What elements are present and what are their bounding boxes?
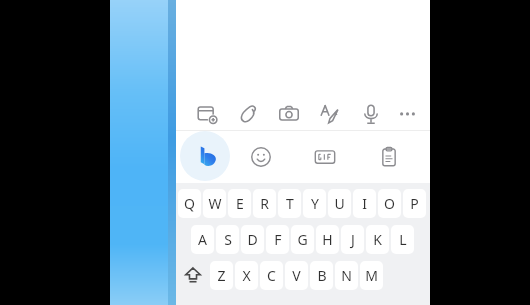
staticText: U bbox=[334, 194, 345, 213]
button[interactable]: N bbox=[335, 261, 358, 290]
button[interactable]: Bing search bbox=[190, 140, 224, 174]
staticText: S bbox=[224, 230, 232, 249]
button[interactable]: Shift bbox=[177, 260, 208, 290]
button[interactable]: W bbox=[203, 189, 226, 218]
button[interactable]: J bbox=[341, 225, 364, 254]
button[interactable]: Attach file bbox=[233, 99, 263, 129]
button[interactable]: A bbox=[191, 225, 214, 254]
button[interactable]: P bbox=[403, 189, 426, 218]
button[interactable]: Clipboard bbox=[374, 142, 404, 172]
staticText: W bbox=[208, 194, 222, 213]
button[interactable]: Camera bbox=[274, 99, 304, 129]
staticText: X bbox=[242, 266, 251, 285]
button[interactable]: Voice input bbox=[356, 99, 386, 129]
button[interactable]: Emoji bbox=[246, 142, 276, 172]
button[interactable]: H bbox=[316, 225, 339, 254]
staticText: Z bbox=[217, 266, 226, 285]
button[interactable]: G bbox=[291, 225, 314, 254]
button[interactable]: K bbox=[366, 225, 389, 254]
staticText: C bbox=[267, 266, 276, 285]
button[interactable]: R bbox=[253, 189, 276, 218]
staticText: G bbox=[297, 230, 308, 249]
staticText: M bbox=[365, 266, 378, 285]
button[interactable]: Add app bbox=[192, 99, 222, 129]
staticText: K bbox=[373, 230, 382, 249]
staticText: R bbox=[260, 194, 269, 213]
staticText: H bbox=[322, 230, 333, 249]
staticText: Q bbox=[184, 194, 195, 213]
button[interactable]: Q bbox=[178, 189, 201, 218]
staticText: V bbox=[292, 266, 301, 285]
button[interactable]: T bbox=[278, 189, 301, 218]
staticText: L bbox=[399, 230, 407, 249]
button[interactable]: M bbox=[360, 261, 383, 290]
button[interactable]: More options bbox=[397, 99, 418, 129]
button[interactable]: Z bbox=[210, 261, 233, 290]
staticText: F bbox=[274, 230, 282, 249]
button[interactable]: L bbox=[391, 225, 414, 254]
staticText: T bbox=[286, 194, 294, 213]
button[interactable]: GIF bbox=[310, 142, 340, 172]
staticText: A bbox=[198, 230, 207, 249]
button[interactable]: U bbox=[328, 189, 351, 218]
button[interactable]: C bbox=[260, 261, 283, 290]
staticText: Y bbox=[311, 194, 319, 213]
staticText: O bbox=[384, 194, 395, 213]
button[interactable]: B bbox=[310, 261, 333, 290]
button[interactable]: D bbox=[241, 225, 264, 254]
button[interactable]: F bbox=[266, 225, 289, 254]
button[interactable]: Handwriting bbox=[315, 99, 345, 129]
staticText: B bbox=[317, 266, 327, 285]
staticText: N bbox=[341, 266, 352, 285]
staticText: I bbox=[362, 194, 367, 213]
button[interactable]: S bbox=[216, 225, 239, 254]
button[interactable]: I bbox=[353, 189, 376, 218]
button[interactable]: V bbox=[285, 261, 308, 290]
staticText: D bbox=[247, 230, 258, 249]
button[interactable]: E bbox=[228, 189, 251, 218]
button[interactable]: X bbox=[235, 261, 258, 290]
staticText: J bbox=[351, 230, 355, 249]
staticText: P bbox=[410, 194, 419, 213]
staticText: E bbox=[236, 194, 244, 213]
button[interactable]: Y bbox=[303, 189, 326, 218]
button[interactable]: O bbox=[378, 189, 401, 218]
